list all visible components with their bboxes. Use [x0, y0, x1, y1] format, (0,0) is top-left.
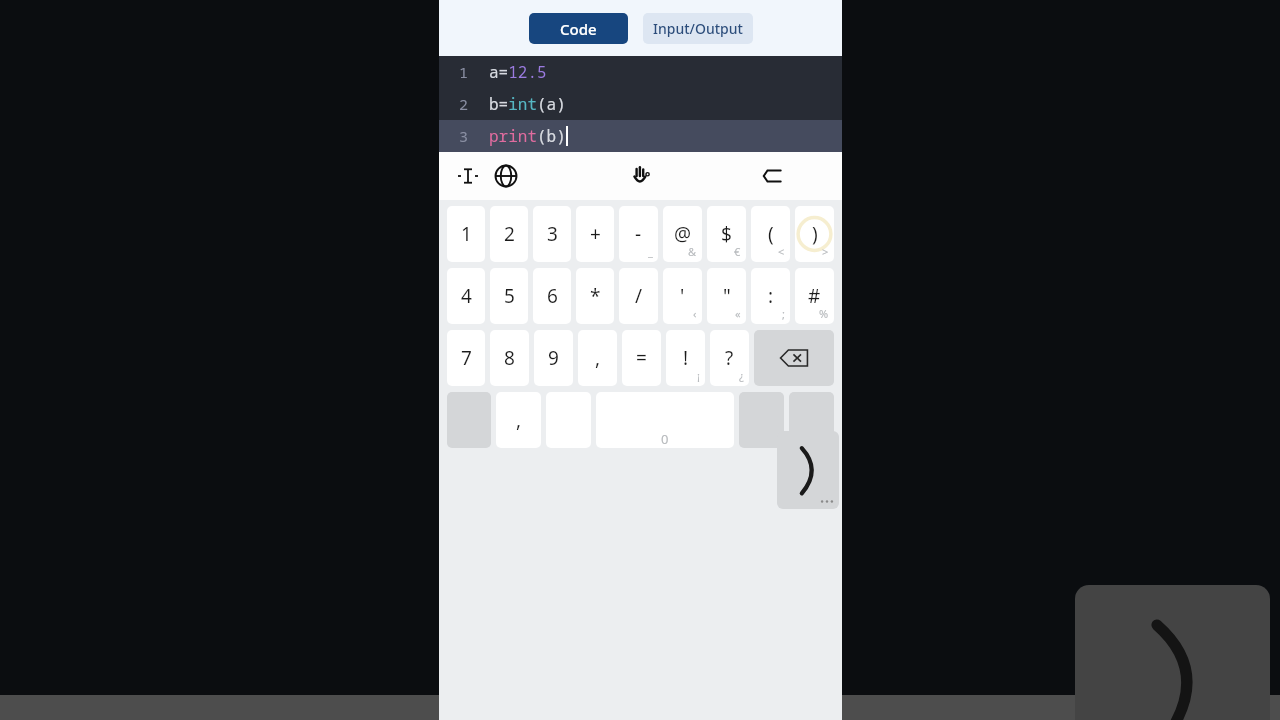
staticText: Code [560, 19, 597, 39]
staticText: = [636, 345, 647, 371]
button[interactable]: ( [751, 206, 790, 262]
button[interactable]: 0 [596, 392, 734, 448]
button[interactable]: 7 [447, 330, 485, 386]
staticText: : [768, 283, 774, 309]
staticText: @ [674, 221, 692, 247]
button[interactable]: = [622, 330, 661, 386]
staticText: _ [648, 244, 653, 259]
other: Key preview close paren [777, 431, 839, 509]
button[interactable]: * [576, 268, 614, 324]
staticText: % [819, 306, 829, 321]
staticText: 3 [459, 126, 469, 146]
staticText: € [734, 244, 741, 259]
staticText: 2 [459, 94, 469, 114]
staticText: & [688, 244, 697, 259]
staticText: ' [680, 283, 685, 309]
button[interactable]: Stickers [756, 159, 790, 193]
button[interactable]: Code [529, 13, 628, 44]
button[interactable]: 2 [439, 88, 842, 120]
button[interactable]: 1 [439, 56, 842, 88]
button[interactable]: 1 [447, 206, 485, 262]
staticText: > [822, 244, 829, 259]
staticText: 0 [661, 430, 669, 448]
button[interactable]: Enter [789, 392, 834, 448]
button[interactable]: $ [707, 206, 746, 262]
staticText: print(b) [489, 125, 566, 147]
staticText: 9 [548, 345, 559, 371]
button[interactable]: ! [666, 330, 705, 386]
staticText: 3 [547, 221, 558, 247]
staticText: 6 [547, 283, 558, 309]
button[interactable]: Input/Output [643, 13, 753, 44]
button[interactable]: , [496, 392, 541, 448]
button[interactable]: @ [663, 206, 702, 262]
staticText: 2 [504, 221, 515, 247]
button[interactable]: - [619, 206, 658, 262]
staticText: ? [725, 345, 734, 371]
staticText: 4 [461, 283, 472, 309]
button[interactable]: 2 [490, 206, 528, 262]
staticText: , [595, 345, 601, 371]
staticText: < [778, 244, 785, 259]
staticText: b=int(a) [489, 93, 566, 115]
staticText: $ [721, 221, 732, 247]
button[interactable]: ? [710, 330, 749, 386]
staticText: , [516, 407, 522, 433]
button[interactable]: 3 [439, 120, 842, 152]
button[interactable]: 5 [490, 268, 528, 324]
button[interactable]: Gesture typing [623, 158, 659, 194]
staticText: / [635, 283, 643, 309]
button[interactable]: Backspace [754, 330, 834, 386]
button[interactable]: / [619, 268, 658, 324]
staticText: « [735, 306, 741, 321]
button[interactable]: , [578, 330, 617, 386]
staticText: ; [782, 306, 785, 321]
staticText: ¿ [739, 368, 744, 383]
staticText: ¡ [697, 368, 700, 383]
staticText: * [590, 283, 601, 309]
button[interactable]: Move cursor [451, 159, 485, 193]
staticText: a=12.5 [489, 61, 547, 83]
staticText: Input/Output [653, 19, 743, 38]
staticText: # [808, 283, 821, 309]
button[interactable]: " [707, 268, 746, 324]
button[interactable]: ) [795, 206, 834, 262]
button[interactable]: # [795, 268, 834, 324]
button[interactable]: 9 [534, 330, 573, 386]
button[interactable]: ' [663, 268, 702, 324]
staticText: 8 [504, 345, 515, 371]
staticText: 5 [504, 283, 515, 309]
button[interactable]: 8 [490, 330, 529, 386]
button[interactable]: : [751, 268, 790, 324]
staticText: ‹ [693, 306, 697, 321]
staticText: ) [812, 221, 818, 247]
staticText: " [723, 283, 731, 309]
staticText: - [635, 221, 642, 247]
staticText: 7 [461, 345, 472, 371]
staticText: ! [683, 345, 689, 371]
button[interactable]: 6 [533, 268, 571, 324]
button[interactable]: + [576, 206, 614, 262]
button[interactable]: Change language [489, 159, 523, 193]
staticText: 1 [461, 221, 472, 247]
staticText: + [590, 221, 601, 247]
staticText: ( [768, 221, 774, 247]
button[interactable]: 3 [533, 206, 571, 262]
button[interactable]: 4 [447, 268, 485, 324]
staticText: 1 [459, 62, 469, 82]
